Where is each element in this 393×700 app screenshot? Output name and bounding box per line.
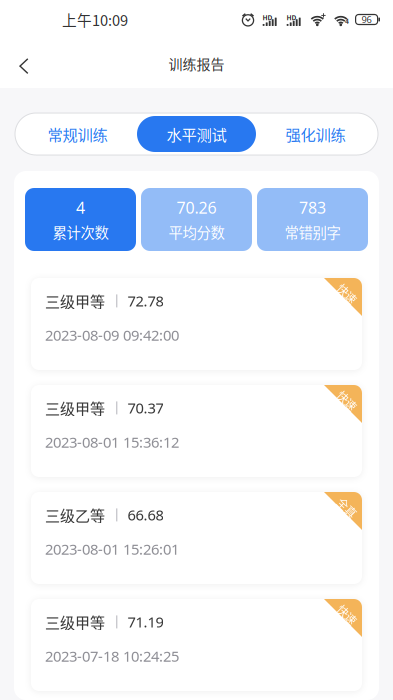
button[interactable]: 三级甲等 (31, 278, 362, 370)
staticText: 72.78 (127, 291, 163, 311)
staticText: 累计次数 (52, 221, 108, 242)
staticText: HD (286, 13, 296, 22)
staticText: 上午10:09 (62, 9, 128, 30)
staticText: 快速 (336, 285, 358, 302)
staticText: 三级乙等 (45, 504, 105, 526)
staticText: 70.37 (127, 398, 163, 418)
button[interactable]: 返回 (0, 39, 43, 88)
button[interactable]: 水平测试 (137, 116, 256, 152)
staticText: 96 (362, 13, 372, 26)
button[interactable]: 强化训练 (256, 116, 375, 152)
staticText: 快速 (336, 392, 358, 409)
staticText: 常错别字 (284, 221, 340, 242)
staticText: 三级甲等 (45, 611, 105, 633)
staticText: HD (262, 13, 272, 22)
button[interactable]: 三级甲等 (31, 385, 362, 477)
staticText: 常规训练 (47, 123, 107, 145)
staticText: 2023-07-18 10:24:25 (45, 646, 179, 666)
staticText: 2023-08-01 15:26:01 (45, 539, 179, 559)
staticText: 强化训练 (285, 123, 345, 145)
staticText: 三级甲等 (45, 290, 105, 312)
staticText: 4 (76, 197, 85, 218)
staticText: 4 (345, 17, 349, 26)
staticText: 三级甲等 (45, 397, 105, 419)
staticText: 快速 (336, 606, 358, 623)
button[interactable]: 常规训练 (18, 116, 137, 152)
staticText: 水平测试 (166, 123, 226, 145)
staticText: 66.68 (127, 505, 163, 525)
staticText: 2023-08-09 09:42:00 (45, 325, 179, 345)
button[interactable]: 三级甲等 (31, 599, 362, 691)
staticText: 70.26 (176, 197, 216, 218)
staticText: 训练报告 (168, 53, 224, 74)
staticText: 全真 (336, 499, 358, 516)
staticText: 平均分数 (168, 221, 224, 242)
staticText: 71.19 (127, 612, 163, 632)
staticText: 783 (299, 197, 326, 218)
staticText: 2023-08-01 15:36:12 (45, 432, 179, 452)
button[interactable]: 三级乙等 (31, 492, 362, 584)
